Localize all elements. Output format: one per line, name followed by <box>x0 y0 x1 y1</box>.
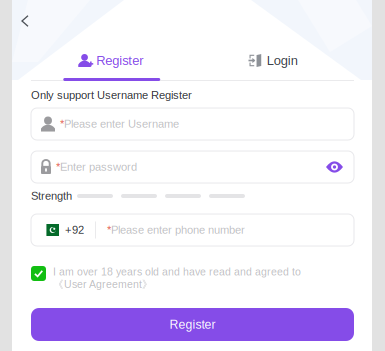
button[interactable]: Back <box>14 10 36 32</box>
staticText: * <box>107 224 111 236</box>
staticText: * <box>60 118 64 130</box>
button[interactable]: +92 <box>42 224 84 236</box>
button[interactable]: Register <box>31 308 354 341</box>
button[interactable]: I am over 18 years old and have read and… <box>31 266 354 300</box>
staticText: Strength <box>31 190 72 202</box>
staticText: +92 <box>65 224 84 236</box>
button[interactable]: Register <box>31 48 192 82</box>
staticText: Only support Username Register <box>31 89 192 101</box>
staticText: Please enter Username <box>64 118 179 130</box>
staticText: Login <box>267 53 298 68</box>
button[interactable]: Show password <box>326 161 343 172</box>
staticText: Please enter phone number <box>111 224 245 236</box>
staticText: Register <box>169 318 215 331</box>
button[interactable]: Login <box>192 48 354 82</box>
staticText: * <box>56 161 60 173</box>
staticText: Enter password <box>60 161 137 173</box>
staticText: I am over 18 years old and have read and… <box>53 266 338 292</box>
staticText: Register <box>96 53 143 68</box>
